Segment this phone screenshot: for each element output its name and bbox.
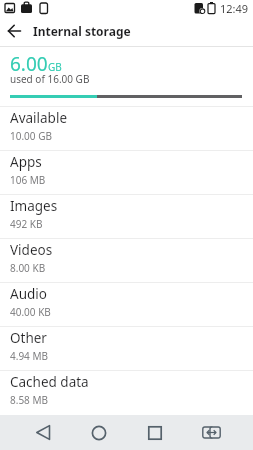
staticText: Apps (10, 153, 42, 171)
staticText: 8.00 KB (10, 261, 46, 275)
staticText: Cached data (10, 373, 89, 391)
staticText: 106 MB (10, 173, 46, 187)
staticText: Images (10, 197, 58, 215)
staticText: 4.94 MB (10, 349, 49, 363)
button[interactable]: Apps (0, 151, 253, 194)
button[interactable]: Audio (0, 283, 253, 326)
button[interactable]: Cached data (0, 371, 253, 414)
staticText: 8.58 MB (10, 393, 49, 407)
staticText: Audio (10, 285, 47, 303)
staticText: used of 16.00 GB (10, 72, 90, 86)
button[interactable] (127, 415, 183, 450)
staticText: 492 KB (10, 217, 43, 231)
staticText: Internal storage (33, 23, 131, 39)
staticText: 12:49 (220, 1, 249, 16)
staticText: Other (10, 329, 47, 347)
button[interactable] (71, 415, 127, 450)
staticText: Available (10, 109, 67, 127)
button[interactable] (183, 415, 239, 450)
staticText: 6.00 (10, 51, 48, 77)
button[interactable]: Images (0, 195, 253, 238)
staticText: 40.00 KB (10, 305, 51, 319)
staticText: GB (48, 60, 62, 74)
button[interactable] (15, 415, 71, 450)
staticText: Videos (10, 241, 53, 259)
button[interactable]: Videos (0, 239, 253, 282)
staticText: 10.00 GB (10, 129, 52, 143)
button[interactable]: Other (0, 327, 253, 370)
button[interactable]: Internal storage (0, 16, 253, 46)
button[interactable]: Available (0, 107, 253, 150)
